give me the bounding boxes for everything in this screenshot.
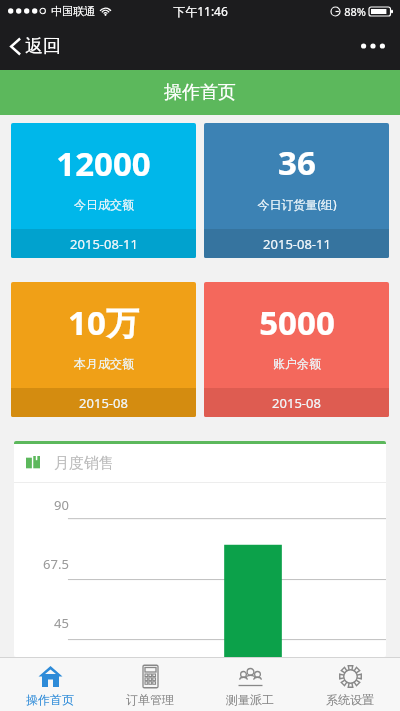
staticText: 10万 — [68, 300, 139, 345]
staticText: 12000 — [56, 141, 151, 186]
staticText: 返回 — [25, 35, 61, 58]
staticText: 账户余额 — [273, 356, 321, 371]
staticText: 测量派工 — [226, 692, 274, 707]
staticText: 2015-08 — [272, 394, 321, 412]
staticText: 月度销售 — [54, 454, 114, 473]
staticText: 本月成交额 — [74, 356, 134, 371]
staticText: 2015-08-11 — [70, 235, 138, 253]
staticText: 2015-08 — [79, 394, 128, 412]
staticText: 今日订货量(组) — [257, 196, 337, 212]
button[interactable]: 5000 — [204, 282, 389, 417]
button[interactable]: 返回 — [0, 29, 75, 64]
staticText: 操作首页 — [164, 81, 236, 104]
button[interactable]: 订单管理 — [100, 658, 200, 711]
staticText: 88% — [344, 4, 366, 19]
button[interactable]: 系统设置 — [300, 658, 400, 711]
staticText: 5000 — [259, 300, 335, 345]
staticText: 订单管理 — [126, 692, 174, 707]
button[interactable]: 10万 — [11, 282, 196, 417]
staticText: 下午11:46 — [173, 3, 228, 19]
button[interactable]: 测量派工 — [200, 658, 300, 711]
button[interactable]: More options — [346, 31, 400, 61]
button[interactable]: 12000 — [11, 123, 196, 258]
staticText: 操作首页 — [26, 692, 74, 707]
staticText: 90 — [54, 496, 69, 514]
staticText: 67.5 — [43, 555, 69, 573]
staticText: 2015-08-11 — [263, 235, 331, 253]
button[interactable]: 36 — [204, 123, 389, 258]
staticText: 36 — [278, 140, 316, 185]
staticText: 45 — [54, 614, 69, 632]
staticText: 系统设置 — [326, 692, 374, 707]
button[interactable]: 操作首页 — [0, 658, 100, 711]
staticText: 中国联通 — [51, 4, 95, 18]
staticText: 今日成交额 — [74, 197, 134, 212]
